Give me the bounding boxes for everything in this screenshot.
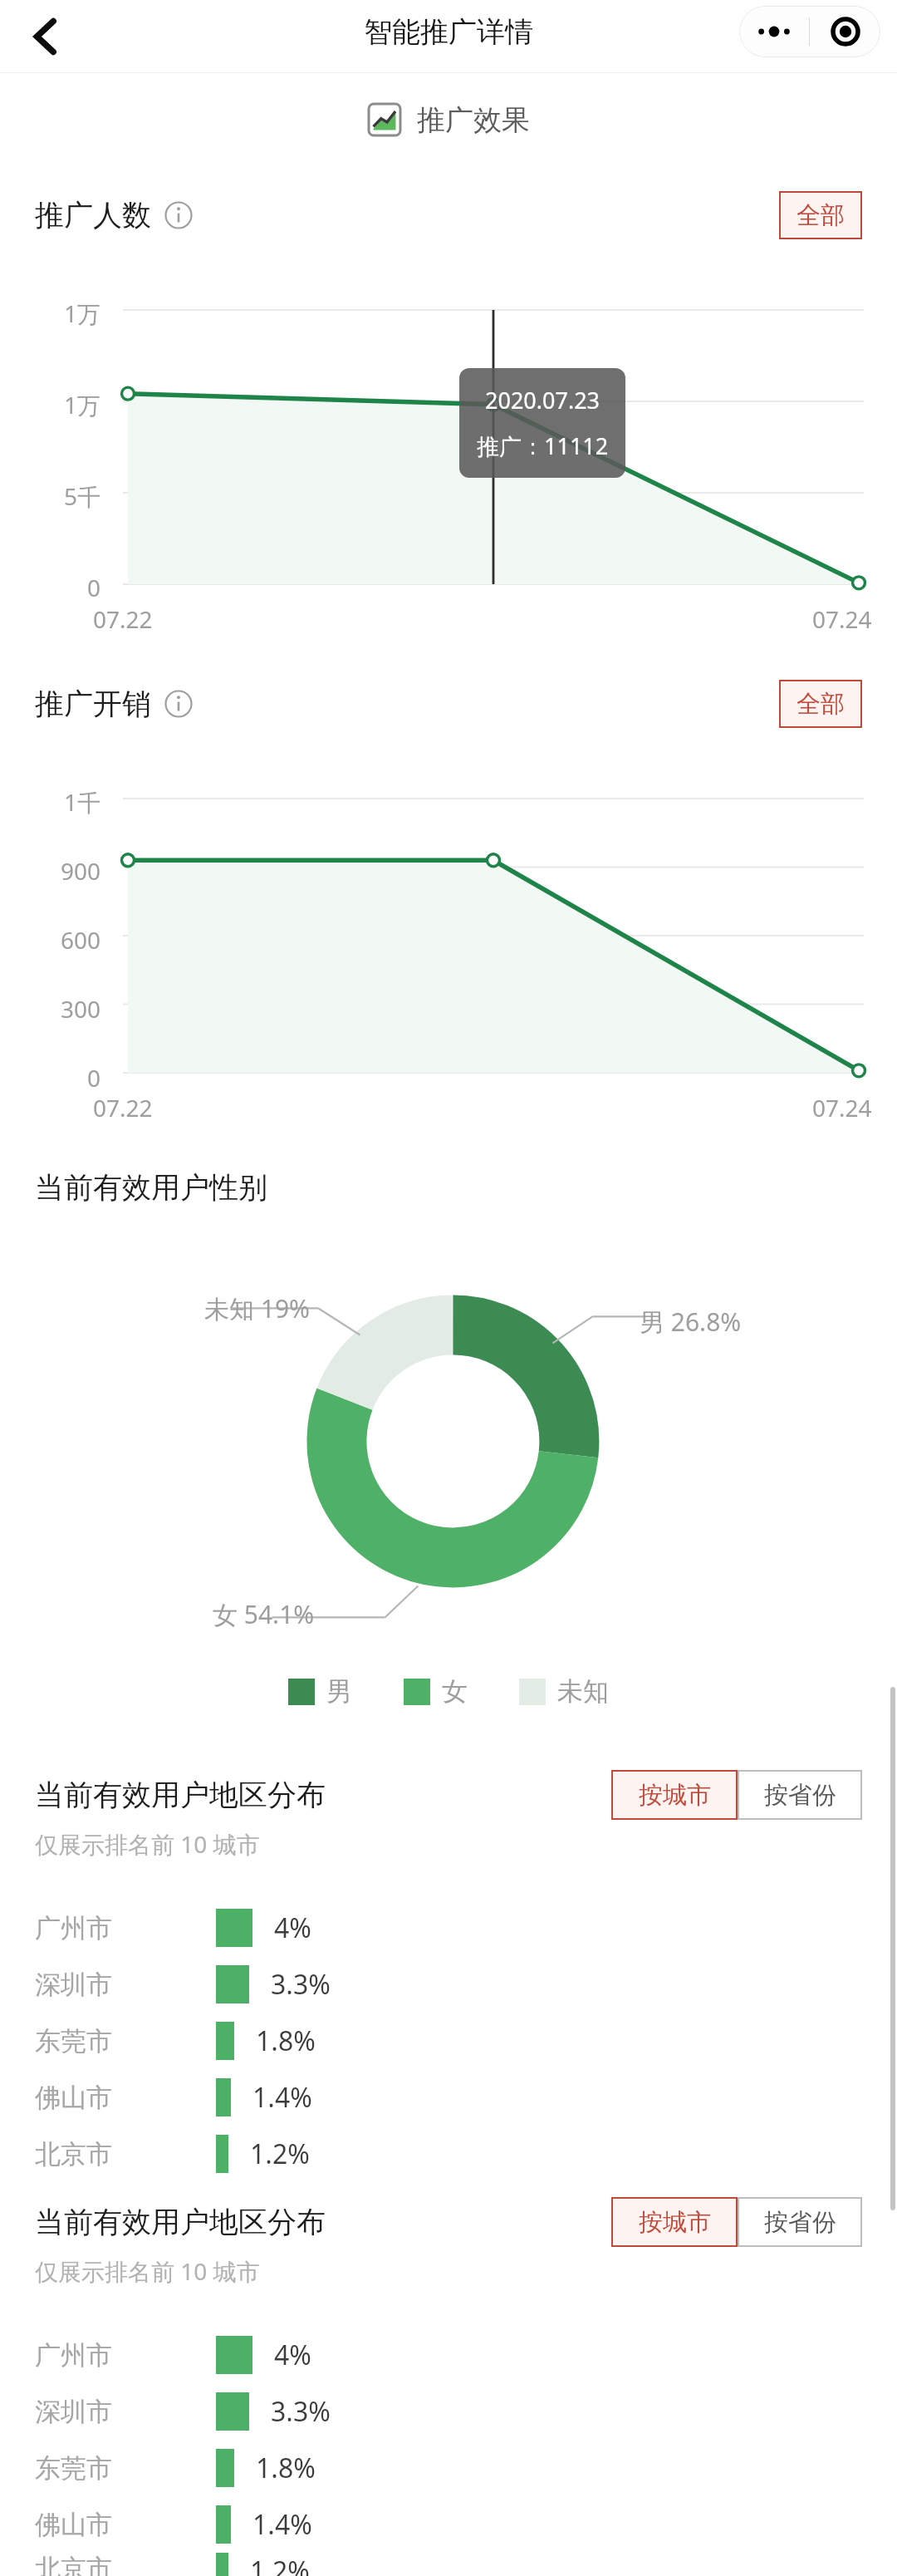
button[interactable]: 说明 (164, 690, 193, 718)
staticText: 4% (274, 1910, 311, 1946)
staticText: 佛山市 (35, 2509, 216, 2541)
staticText: 07.24 (812, 1092, 872, 1123)
staticText: 仅展示排名前 10 城市 (35, 1828, 260, 1860)
staticText: 广州市 (35, 2339, 216, 2372)
staticText: 1.4% (252, 2079, 312, 2116)
staticText: 当前有效用户地区分布 (35, 2204, 326, 2240)
staticText: 女 (442, 1675, 468, 1708)
button[interactable]: 按省份 (738, 2197, 862, 2247)
staticText: 东莞市 (35, 2025, 216, 2057)
staticText: 600 (61, 924, 101, 956)
button[interactable]: 按省份 (738, 1770, 862, 1820)
button[interactable]: 关闭 (810, 6, 880, 57)
staticText: 北京市 (35, 2553, 216, 2576)
staticText: 2020.07.23 (485, 385, 600, 415)
staticText: 全部 (797, 200, 845, 231)
staticText: 男 (326, 1675, 352, 1708)
staticText: 0 (87, 572, 101, 603)
staticText: 1.2% (250, 2553, 310, 2576)
staticText: 推广开销 (35, 686, 151, 722)
staticText: 深圳市 (35, 2396, 216, 2428)
staticText: 07.24 (812, 603, 872, 635)
staticText: 1万 (64, 389, 101, 420)
staticText: 佛山市 (35, 2082, 216, 2114)
staticText: 当前有效用户性别 (35, 1169, 267, 1206)
button[interactable]: 全部 (779, 680, 862, 728)
staticText: 按省份 (764, 2207, 836, 2238)
button[interactable]: 说明 (164, 201, 193, 229)
staticText: 推广人数 (35, 197, 151, 234)
staticText: 当前有效用户地区分布 (35, 1777, 326, 1813)
staticText: 未知 (557, 1675, 609, 1708)
button[interactable]: 全部 (779, 191, 862, 239)
staticText: 1千 (64, 786, 101, 818)
staticText: 推广：11112 (477, 430, 609, 461)
staticText: 按城市 (639, 2207, 711, 2238)
staticText: 900 (61, 855, 101, 887)
staticText: 07.22 (93, 1092, 153, 1123)
staticText: 男 26.8% (640, 1305, 742, 1339)
staticText: 推广效果 (417, 102, 530, 138)
staticText: 1.8% (256, 2450, 316, 2486)
staticText: 300 (61, 993, 101, 1025)
staticText: 4% (274, 2337, 311, 2373)
button[interactable]: 按城市 (611, 1770, 738, 1820)
staticText: 1万 (64, 297, 101, 329)
button[interactable]: 按城市 (611, 2197, 738, 2247)
staticText: 东莞市 (35, 2452, 216, 2485)
staticText: 1.8% (256, 2023, 316, 2059)
staticText: 智能推广详情 (364, 14, 533, 50)
staticText: 5千 (64, 480, 101, 512)
button[interactable]: 更多 (739, 6, 809, 57)
staticText: 女 54.1% (213, 1597, 315, 1631)
staticText: 北京市 (35, 2138, 216, 2170)
staticText: 0 (87, 1062, 101, 1094)
staticText: 全部 (797, 689, 845, 720)
staticText: 1.4% (252, 2506, 312, 2543)
staticText: 07.22 (93, 603, 153, 635)
staticText: 3.3% (271, 2393, 331, 2430)
staticText: 深圳市 (35, 1969, 216, 2001)
staticText: 3.3% (271, 1966, 331, 2003)
staticText: 按省份 (764, 1780, 836, 1811)
staticText: 仅展示排名前 10 城市 (35, 2255, 260, 2287)
staticText: 广州市 (35, 1912, 216, 1944)
staticText: 按城市 (639, 1780, 711, 1811)
staticText: 1.2% (250, 2136, 310, 2172)
staticText: 未知 19% (204, 1291, 311, 1325)
button[interactable]: 返回 (18, 9, 73, 64)
